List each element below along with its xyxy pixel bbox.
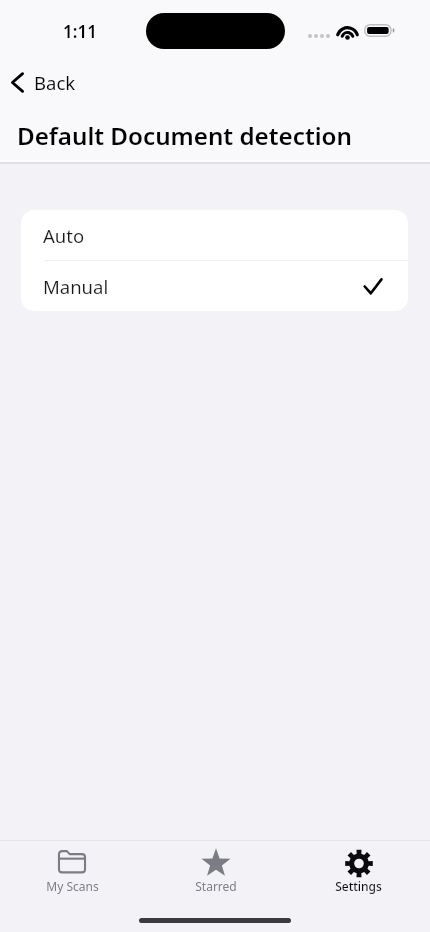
staticText: Manual (43, 274, 109, 299)
staticText: 1:11 (63, 20, 97, 43)
staticText: Starred (195, 878, 237, 894)
staticText: My Scans (46, 878, 99, 894)
staticText: Default Document detection (17, 119, 352, 152)
staticText: Auto (43, 223, 85, 248)
button[interactable]: Back (3, 66, 82, 99)
button[interactable]: Starred (144, 840, 287, 898)
button[interactable]: My Scans (0, 840, 144, 898)
staticText: Settings (335, 878, 382, 894)
staticText: Back (34, 70, 76, 95)
button[interactable]: Auto (21, 210, 408, 260)
button[interactable]: Settings (287, 840, 430, 898)
button[interactable]: Manual (21, 261, 408, 311)
